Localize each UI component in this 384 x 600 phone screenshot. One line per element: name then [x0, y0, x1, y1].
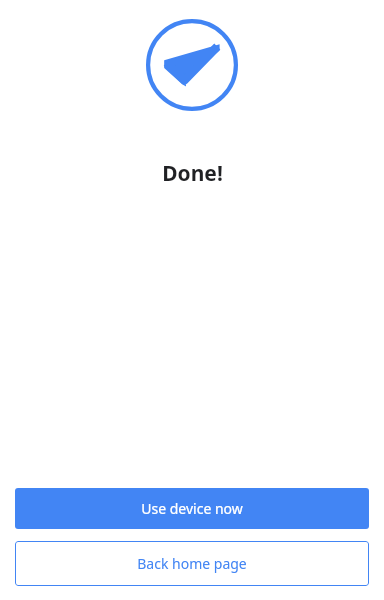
other: Success	[146, 19, 238, 111]
button[interactable]: Back home page	[15, 541, 369, 586]
staticText: Use device now	[141, 499, 243, 518]
staticText: Done!	[162, 159, 223, 188]
staticText: Back home page	[137, 554, 247, 573]
button[interactable]: Use device now	[15, 488, 369, 529]
